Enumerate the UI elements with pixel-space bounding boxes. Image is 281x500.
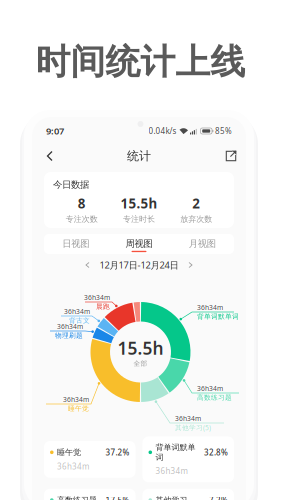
- staticText: 日视图: [62, 238, 89, 249]
- staticText: 高数练习题: [57, 495, 97, 500]
- staticText: 专注次数: [66, 214, 98, 224]
- button[interactable]: 其他学习: [142, 489, 234, 500]
- staticText: 85%: [215, 126, 232, 136]
- button[interactable]: 日视图: [44, 236, 107, 252]
- staticText: 晨跑: [96, 302, 110, 311]
- button[interactable]: Back: [41, 147, 59, 165]
- staticText: 15.5h: [117, 336, 163, 359]
- staticText: 背单词默单词: [197, 312, 239, 321]
- staticText: 周视图: [125, 238, 152, 249]
- button[interactable]: 月视图: [171, 236, 234, 252]
- staticText: 36h34m: [63, 395, 89, 404]
- staticText: 36h34m: [64, 307, 90, 316]
- button[interactable]: Share: [225, 150, 237, 162]
- staticText: 时间统计上线: [35, 41, 245, 83]
- staticText: 睡午觉: [57, 447, 81, 457]
- staticText: 0.04k/s: [148, 126, 176, 136]
- staticText: 统计: [127, 149, 151, 163]
- staticText: 其他学习: [156, 495, 188, 500]
- staticText: 17.5%: [105, 495, 129, 500]
- staticText: 全部: [133, 359, 147, 368]
- staticText: 37.2%: [105, 447, 129, 458]
- staticText: 8: [78, 194, 86, 212]
- staticText: 专注时长: [123, 214, 155, 224]
- staticText: 2: [192, 194, 200, 212]
- staticText: 36h34m: [175, 414, 201, 423]
- button[interactable]: Next period: [185, 260, 195, 270]
- staticText: 32.8%: [204, 447, 228, 458]
- staticText: 睡午觉: [68, 404, 89, 413]
- staticText: 今日数据: [53, 179, 89, 190]
- button[interactable]: 高数练习题: [44, 489, 135, 500]
- staticText: 9:07: [46, 125, 64, 137]
- staticText: 背单词默单词: [156, 442, 196, 462]
- staticText: 36h34m: [155, 466, 187, 476]
- staticText: 15.5h: [120, 194, 157, 212]
- staticText: 36h34m: [84, 293, 110, 302]
- staticText: 12月17日-12月24日: [99, 259, 178, 271]
- staticText: 物理刷题: [55, 331, 83, 340]
- staticText: 其他学习(5): [175, 423, 211, 432]
- staticText: 背古文: [69, 316, 90, 325]
- staticText: 7.2%: [209, 495, 228, 500]
- staticText: 高数练习题: [197, 393, 232, 402]
- staticText: 36h34m: [197, 384, 223, 393]
- staticText: 36h34m: [197, 303, 223, 312]
- button[interactable]: 背单词默单词: [142, 436, 234, 482]
- staticText: 放弃次数: [180, 214, 212, 224]
- staticText: 36h34m: [57, 461, 89, 472]
- staticText: 36h34m: [57, 322, 83, 331]
- button[interactable]: 睡午觉: [44, 441, 135, 478]
- button[interactable]: Previous period: [82, 260, 92, 270]
- button[interactable]: 周视图: [107, 236, 171, 252]
- staticText: 月视图: [189, 238, 216, 249]
